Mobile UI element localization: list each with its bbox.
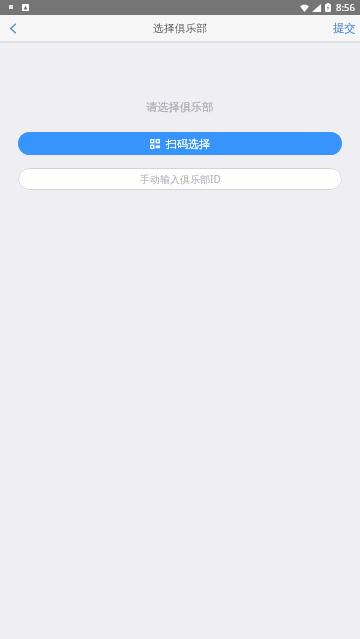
staticText: 扫码选择 <box>166 137 210 151</box>
staticText: 8:56 <box>336 1 355 14</box>
staticText: 请选择俱乐部 <box>146 100 214 114</box>
staticText: 提交 <box>333 21 356 35</box>
button[interactable]: 手动输入俱乐部ID <box>18 168 342 190</box>
button[interactable]: 扫码选择 <box>18 132 342 155</box>
button[interactable]: Back <box>0 15 26 41</box>
staticText: 手动输入俱乐部ID <box>140 172 221 186</box>
button[interactable]: 提交 <box>0 15 356 41</box>
staticText: 选择俱乐部 <box>153 22 207 36</box>
